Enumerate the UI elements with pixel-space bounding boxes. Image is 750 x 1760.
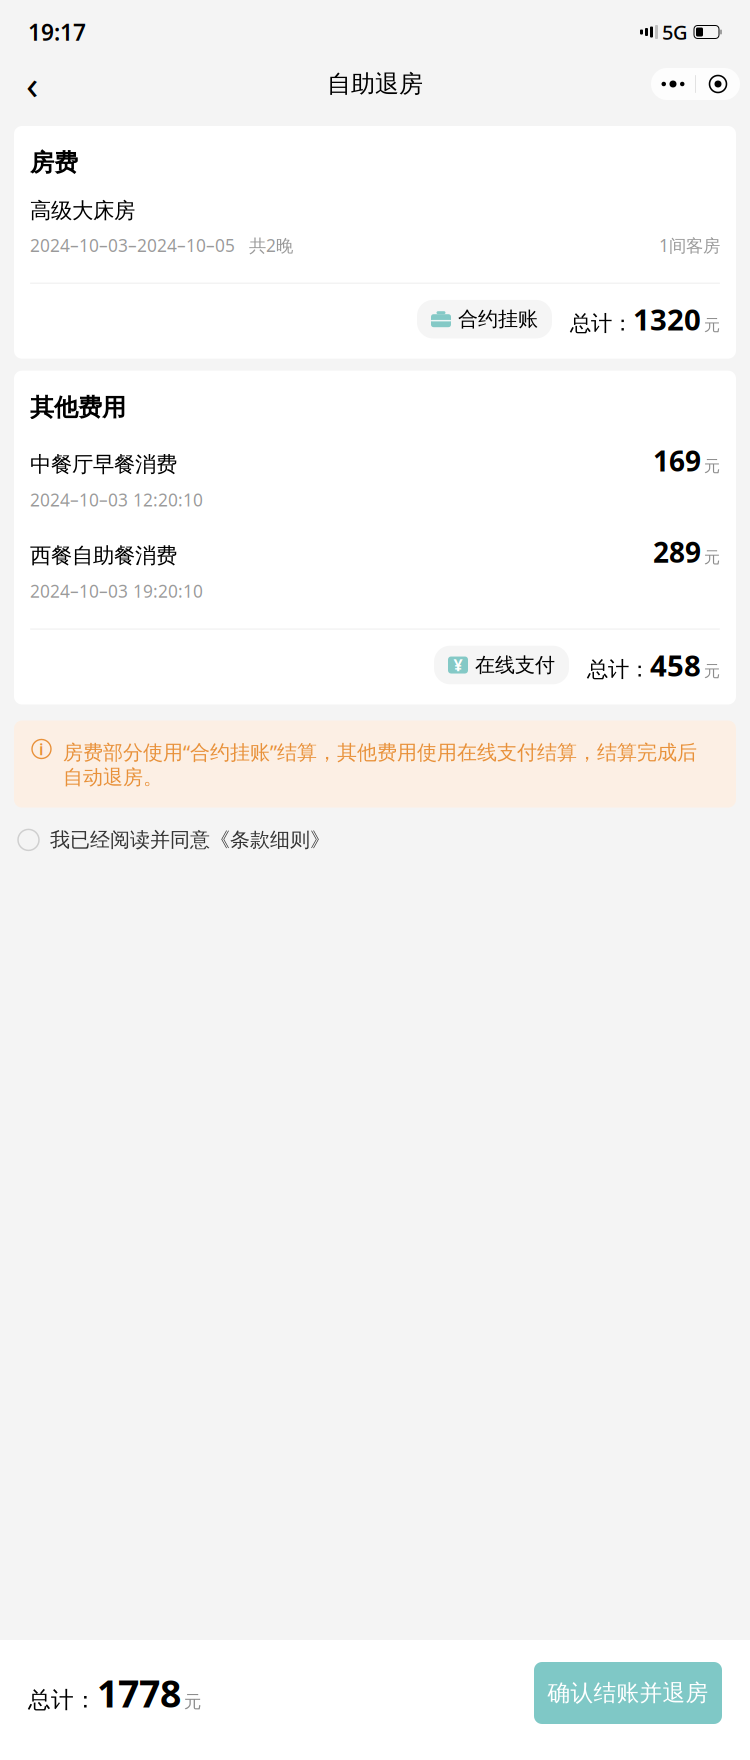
staticText: 5G — [662, 19, 688, 45]
staticText: 289 — [653, 533, 701, 570]
button[interactable]: 确认结账并退房 — [534, 1662, 722, 1724]
staticText: ‹ — [26, 57, 38, 110]
staticText: 其他费用 — [30, 393, 126, 422]
staticText: 西餐自助餐消费 — [30, 543, 177, 569]
staticText: 2024–10–03 19:20:10 — [30, 579, 203, 602]
staticText: 自助退房 — [327, 69, 423, 99]
staticText: 总计： — [587, 656, 650, 682]
staticText: 元 — [704, 548, 720, 567]
staticText: 我已经阅读并同意《条款细则》 — [50, 828, 330, 852]
button[interactable]: 返回 — [10, 62, 54, 106]
button[interactable]: 更多 — [651, 68, 695, 100]
staticText: 2024–10–03 12:20:10 — [30, 488, 203, 511]
staticText: 1778 — [97, 1668, 181, 1718]
staticText: 1320 — [633, 300, 701, 339]
staticText: 中餐厅早餐消费 — [30, 451, 177, 478]
staticText: 共2晚 — [249, 234, 293, 257]
staticText: 总计： — [28, 1686, 97, 1714]
staticText: 在线支付 — [475, 653, 555, 677]
staticText: i — [39, 738, 44, 760]
button[interactable]: 我已经阅读并同意《条款细则》 — [14, 822, 736, 858]
staticText: 房费 — [30, 148, 78, 177]
staticText: 元 — [704, 315, 720, 335]
staticText: 高级大床房 — [30, 197, 135, 224]
staticText: 元 — [704, 456, 720, 476]
staticText: 确认结账并退房 — [547, 1679, 708, 1707]
staticText: 合约挂账 — [458, 307, 538, 331]
staticText: 2024–10–03–2024–10–05 — [30, 234, 235, 257]
staticText: 19:17 — [28, 17, 86, 47]
staticText: ¥ — [453, 654, 462, 676]
staticText: 1间客房 — [659, 234, 720, 257]
button[interactable]: 关闭 — [696, 68, 740, 100]
staticText: 元 — [704, 661, 720, 681]
staticText: 458 — [650, 645, 701, 684]
staticText: 169 — [653, 442, 701, 479]
staticText: 房费部分使用“合约挂账”结算，其他费用使用在线支付结算，结算完成后自动退房。 — [63, 738, 697, 790]
staticText: 总计： — [570, 310, 633, 337]
staticText: 元 — [184, 1691, 201, 1712]
